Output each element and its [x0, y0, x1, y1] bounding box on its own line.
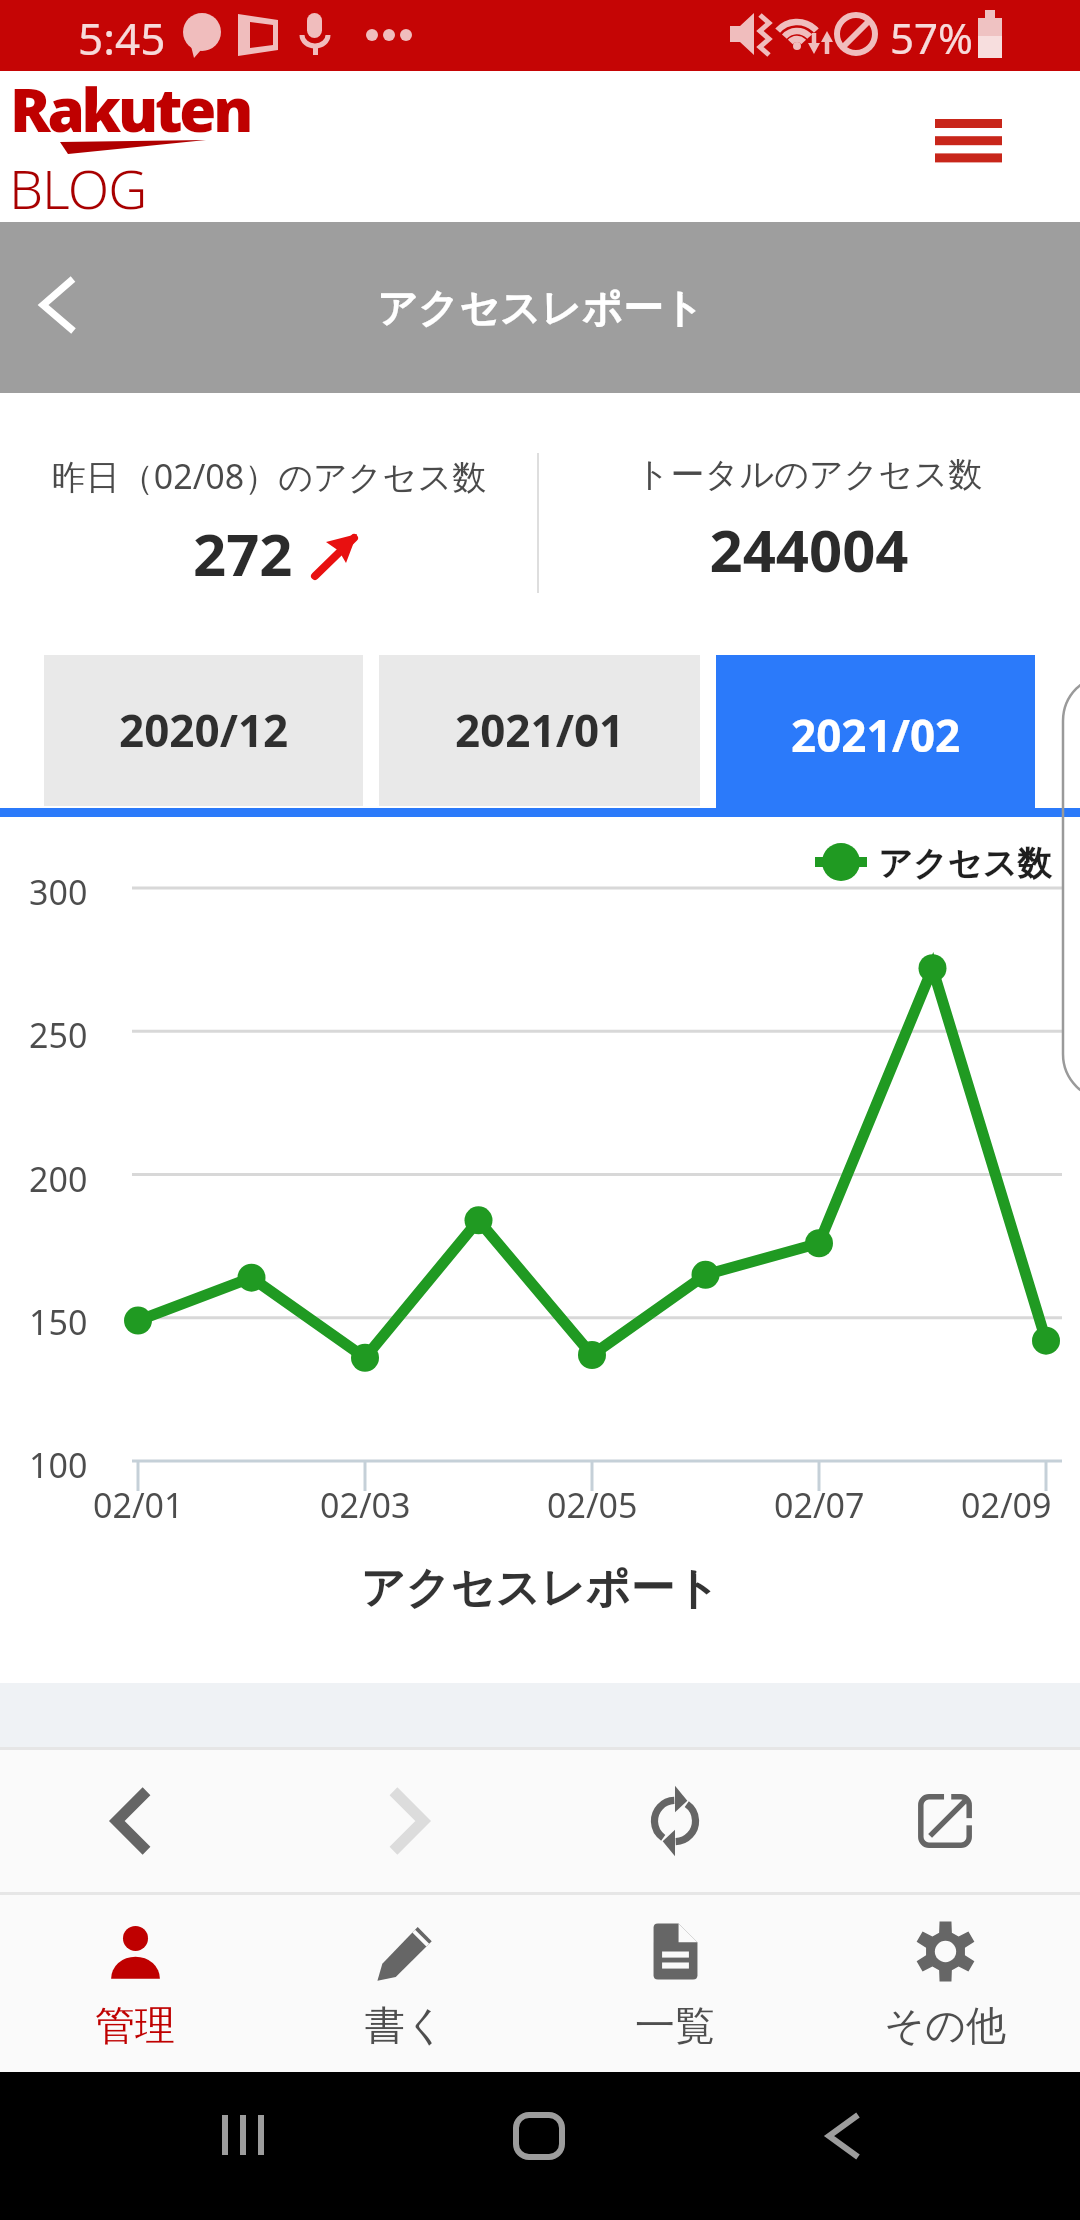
staticText: 昨日（02/08）のアクセス数 — [0, 453, 538, 499]
staticText: 200 — [29, 1156, 88, 1202]
staticText: 272 — [193, 514, 293, 593]
button[interactable]: Forward — [270, 1750, 540, 1892]
button[interactable]: 2021/01 — [379, 655, 700, 806]
staticText: その他 — [884, 2000, 1006, 2050]
staticText: Rakuten — [10, 68, 251, 150]
staticText: 02/07 — [774, 1482, 865, 1528]
button[interactable]: Menu — [904, 94, 1032, 186]
staticText: 書く — [365, 2000, 446, 2050]
staticText: 300 — [29, 869, 88, 915]
button[interactable]: 管理 — [0, 1895, 270, 2072]
staticText: トータルのアクセス数 — [538, 453, 1080, 496]
staticText: 5:45 — [78, 8, 166, 68]
staticText: 250 — [29, 1012, 88, 1058]
staticText: アクセスレポート — [377, 283, 704, 333]
staticText: 2021/02 — [791, 705, 961, 765]
button[interactable]: 2020/12 — [44, 655, 363, 806]
staticText: 02/05 — [547, 1482, 638, 1528]
staticText: 02/09 — [961, 1482, 1052, 1528]
button[interactable]: Back — [0, 243, 130, 373]
staticText: BLOG — [9, 151, 147, 225]
staticText: 2021/01 — [455, 700, 625, 760]
button[interactable]: Reload — [540, 1750, 810, 1892]
staticText: 02/01 — [93, 1482, 184, 1528]
staticText: 2020/12 — [119, 700, 289, 760]
button[interactable]: 2021/02 — [716, 655, 1035, 817]
staticText: 一覧 — [635, 2000, 715, 2050]
button[interactable]: 書く — [270, 1895, 540, 2072]
button[interactable]: Open in browser — [810, 1750, 1080, 1892]
staticText: 57% — [890, 9, 973, 66]
staticText: 100 — [29, 1442, 88, 1488]
staticText: アクセスレポート — [0, 1561, 1080, 1616]
button[interactable]: その他 — [810, 1895, 1080, 2072]
staticText: アクセス数 — [878, 842, 1052, 885]
staticText: 244004 — [538, 510, 1080, 589]
staticText: 02/03 — [320, 1482, 411, 1528]
button[interactable]: Back — [0, 1750, 270, 1892]
staticText: 管理 — [95, 2000, 175, 2050]
button[interactable]: 一覧 — [540, 1895, 810, 2072]
staticText: 150 — [29, 1299, 88, 1345]
